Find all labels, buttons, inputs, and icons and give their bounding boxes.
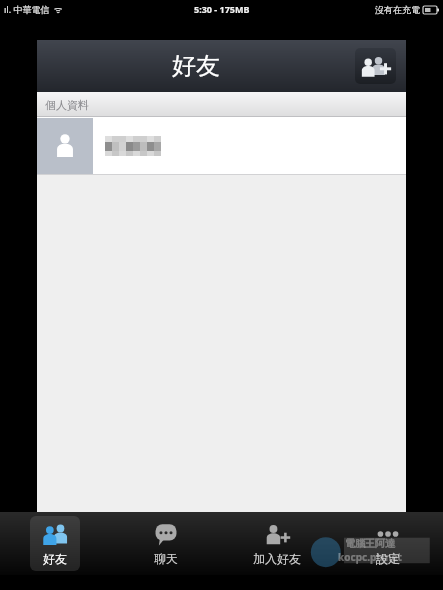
button[interactable]: 設定 [363, 516, 413, 571]
staticText: 個人資料 [45, 98, 89, 112]
button[interactable]: 好友 [30, 516, 80, 571]
button[interactable]: 加入好友 [243, 516, 311, 571]
staticText: 好友 [172, 51, 220, 81]
button[interactable]: 聊天 [141, 516, 191, 571]
staticText: 沒有在充電 [375, 4, 420, 15]
staticText: 5:30 - 175MB [194, 3, 250, 15]
staticText: 加入好友 [253, 551, 301, 566]
staticText: 電腦王阿達 kocpc.pixnet [338, 537, 402, 564]
staticText: 設定 [376, 551, 400, 566]
staticText: ıl. 中華電信 ᯤ [4, 3, 63, 15]
staticText: 好友 [43, 551, 67, 566]
staticText: 聊天 [154, 551, 178, 566]
button[interactable] [37, 117, 406, 174]
button[interactable]: Add friend [355, 48, 396, 84]
